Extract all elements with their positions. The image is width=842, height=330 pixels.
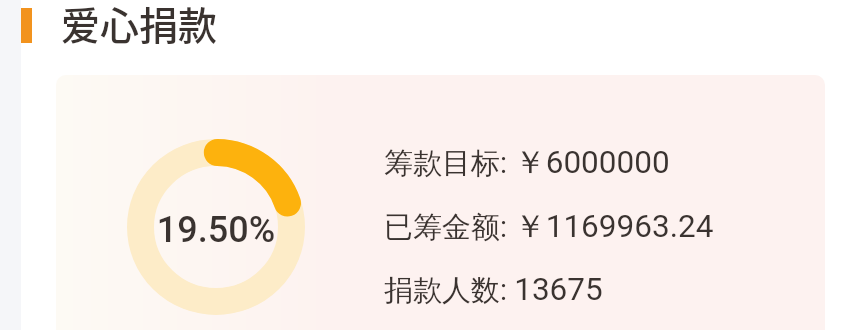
staticText: 19.50% [127,209,305,251]
staticText: 筹款目标: ￥6000000 [384,143,670,183]
staticText: 爱心捐款 [61,0,218,47]
other: Funding progress 19.50 percent [127,139,305,315]
button[interactable] [56,75,825,330]
staticText: 捐款人数: 13675 [384,271,603,309]
staticText: 已筹金额: ￥1169963.24 [384,207,714,247]
button[interactable]: 爱心捐款 [21,0,251,52]
